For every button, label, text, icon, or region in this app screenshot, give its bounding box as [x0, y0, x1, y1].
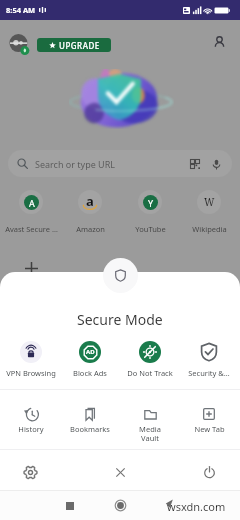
staticText: Search or type URL — [35, 158, 116, 170]
staticText: wsxdn.com — [167, 499, 226, 514]
staticText: UPGRADE — [59, 40, 100, 51]
button[interactable]: Voice search — [208, 156, 224, 172]
staticText: Secure Mode — [77, 310, 163, 329]
staticText: VPN Browsing — [6, 368, 56, 378]
button[interactable]: History — [2, 405, 60, 434]
staticText: New Tab — [194, 424, 225, 434]
button[interactable]: Security &… — [180, 341, 238, 378]
staticText: Do Not Track — [127, 368, 173, 378]
button[interactable]: Back — [162, 497, 175, 510]
button[interactable]: Search or type URL — [8, 150, 232, 177]
staticText: 8:54 AM — [6, 5, 36, 15]
staticText: Avast Secure … — [5, 224, 58, 234]
staticText: YouTube — [135, 224, 166, 234]
staticText: AD — [86, 348, 95, 356]
button[interactable]: Close — [106, 458, 134, 486]
button[interactable]: Profile — [9, 34, 30, 55]
button[interactable]: a — [61, 190, 119, 234]
staticText: Y — [148, 197, 154, 209]
button[interactable]: VPN Browsing — [2, 341, 60, 378]
staticText: W — [204, 195, 215, 209]
button[interactable]: Home — [112, 497, 128, 513]
button[interactable]: W — [180, 190, 238, 234]
button[interactable]: Account — [208, 31, 230, 53]
button[interactable]: Secure mode — [103, 258, 138, 293]
button[interactable]: New Tab — [180, 405, 238, 434]
staticText: Wikipedia — [192, 224, 227, 234]
button[interactable]: Bookmarks — [61, 405, 119, 434]
button[interactable]: Y — [121, 190, 179, 234]
staticText: Bookmarks — [70, 424, 110, 434]
staticText: History — [18, 424, 44, 434]
button[interactable]: Scan QR code — [187, 156, 203, 172]
staticText: Security &… — [188, 368, 230, 378]
staticText: Media Vault — [139, 424, 161, 443]
staticText: Amazon — [76, 224, 105, 234]
button[interactable]: Settings — [16, 458, 44, 486]
staticText: Block Ads — [73, 368, 107, 378]
button[interactable]: A — [2, 190, 60, 234]
button[interactable]: Do Not Track — [121, 341, 179, 378]
button[interactable]: AD — [61, 341, 119, 378]
button[interactable]: Recent apps — [62, 498, 77, 513]
staticText: a — [86, 192, 94, 208]
staticText: A — [29, 197, 35, 209]
button[interactable]: Exit — [195, 458, 223, 486]
button[interactable]: UPGRADE — [37, 38, 111, 52]
button[interactable]: Media Vault — [121, 405, 179, 443]
